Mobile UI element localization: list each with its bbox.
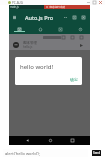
staticText: Auto.js Pro: [25, 14, 54, 21]
button[interactable]: Tab 1: [9, 25, 30, 34]
button[interactable]: Minimize: [85, 0, 91, 5]
button[interactable]: Recents: [67, 136, 77, 145]
button[interactable]: Back: [22, 136, 32, 145]
staticText: hello world!: [20, 63, 54, 71]
button[interactable]: Run: [77, 41, 85, 49]
staticText: hello.js: [23, 45, 33, 49]
button[interactable]: Close: [97, 0, 103, 5]
button[interactable]: Send: [92, 150, 101, 156]
staticText: Send: [93, 151, 101, 155]
button[interactable]: Tab 2: [30, 25, 50, 34]
staticText: 确定: [70, 77, 78, 82]
button[interactable]: ✕ 脚本运行出错: [44, 5, 90, 9]
staticText: 脚本管理: [23, 41, 37, 45]
button[interactable]: alert('hello world');: [3, 149, 88, 157]
button[interactable]: Tab 3: [50, 25, 70, 34]
button[interactable]: Maximize: [91, 0, 97, 5]
button[interactable]: Home: [45, 136, 55, 145]
staticText: main.js: [10, 5, 19, 9]
button[interactable]: main.js: [9, 5, 44, 9]
staticText: ✕ 脚本运行出错: [46, 5, 66, 9]
button[interactable]: Menu: [10, 11, 19, 23]
staticText: PC-AUG: [12, 1, 23, 5]
button[interactable]: 确定: [69, 76, 79, 83]
button[interactable]: Documentation: [70, 11, 78, 23]
staticText: alert('hello world');: [5, 151, 40, 156]
button[interactable]: New: [79, 11, 87, 23]
button[interactable]: Tab 4: [70, 25, 90, 34]
button[interactable]: More options: [61, 11, 69, 23]
